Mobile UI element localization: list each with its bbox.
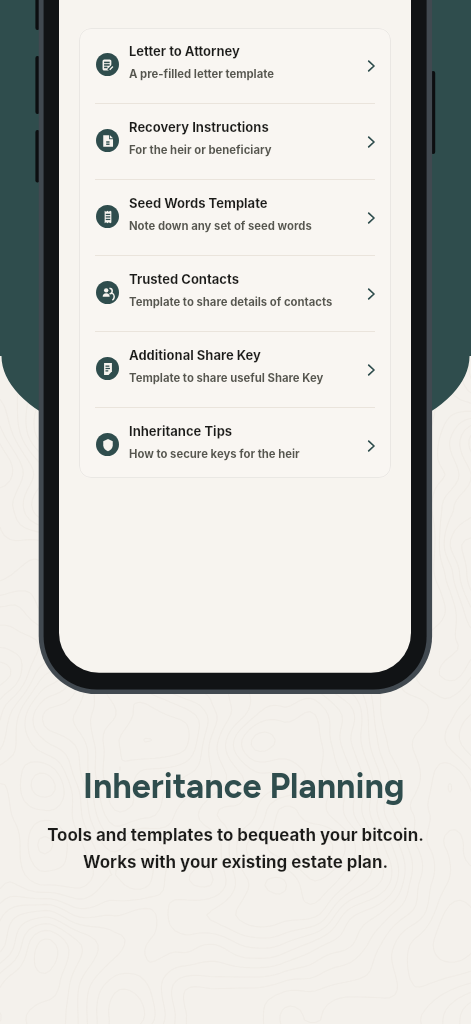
other: Open Additional Share Key (363, 362, 379, 378)
staticText: Seed Words Template (129, 195, 268, 211)
staticText: Trusted Contacts (129, 271, 239, 287)
staticText: A pre-filled letter template (129, 67, 274, 81)
staticText: Template to share useful Share Key (129, 371, 324, 385)
button[interactable]: Trusted Contacts (79, 256, 391, 332)
staticText: Additional Share Key (129, 347, 261, 363)
other: Open Letter to Attorney (363, 58, 379, 74)
staticText: Letter to Attorney (129, 43, 240, 59)
button[interactable]: Recovery Instructions (79, 104, 391, 180)
staticText: Inheritance Planning (83, 766, 405, 807)
other: Open Trusted Contacts (363, 286, 379, 302)
staticText: For the heir or beneficiary (129, 143, 272, 157)
staticText: Template to share details of contacts (129, 295, 333, 309)
other: Open Recovery Instructions (363, 134, 379, 150)
button[interactable]: Letter to Attorney (79, 28, 391, 104)
other: Open Seed Words Template (363, 210, 379, 226)
staticText: Recovery Instructions (129, 119, 269, 135)
staticText: Tools and templates to bequeath your bit… (47, 825, 424, 872)
button[interactable]: Seed Words Template (79, 180, 391, 256)
staticText: Inheritance Tips (129, 423, 233, 439)
other: Open Inheritance Tips (363, 438, 379, 454)
staticText: Note down any set of seed words (129, 219, 312, 233)
staticText: How to secure keys for the heir (129, 447, 300, 461)
button[interactable]: Inheritance Tips (79, 408, 391, 478)
button[interactable]: Additional Share Key (79, 332, 391, 408)
